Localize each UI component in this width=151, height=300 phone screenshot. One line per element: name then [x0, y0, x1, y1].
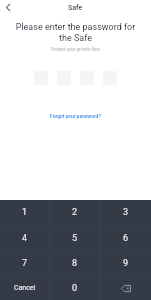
button[interactable]: 8 [50, 251, 100, 275]
button[interactable]: 0 [50, 276, 100, 300]
staticText: 1 [22, 207, 28, 218]
staticText: 4 [22, 233, 28, 244]
staticText: Safe [68, 4, 83, 12]
button[interactable]: 7 [0, 251, 49, 275]
staticText: 3 [123, 207, 129, 218]
staticText: 2 [72, 207, 78, 218]
staticText: Protect your private files [0, 47, 151, 52]
button[interactable]: 3 [101, 200, 151, 225]
button[interactable]: Back [0, 0, 16, 15]
staticText: 5 [72, 233, 78, 244]
button[interactable]: 1 [0, 200, 49, 225]
staticText: Please enter the password for the Safe [10, 22, 141, 44]
staticText: 7 [22, 258, 28, 269]
staticText: 9 [123, 258, 129, 269]
button[interactable]: Backspace [101, 276, 151, 300]
staticText: Cancel [14, 284, 36, 292]
button[interactable]: 9 [101, 251, 151, 275]
button[interactable]: 5 [50, 226, 100, 250]
staticText: 0 [72, 283, 78, 294]
button[interactable]: 4 [0, 226, 49, 250]
button[interactable]: 2 [50, 200, 100, 225]
staticText: 6 [123, 233, 129, 244]
button[interactable]: 6 [101, 226, 151, 250]
staticText: Forgot your password? [50, 113, 101, 119]
button[interactable]: Cancel [0, 276, 49, 300]
button[interactable]: Forgot your password? [46, 109, 105, 123]
staticText: 8 [72, 258, 78, 269]
